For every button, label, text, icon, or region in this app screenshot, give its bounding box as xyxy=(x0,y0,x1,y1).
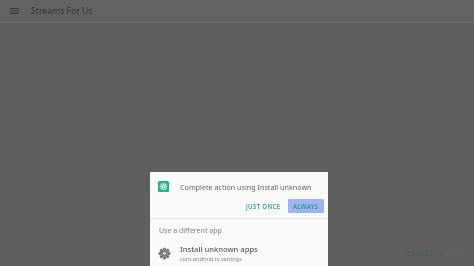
staticText: CANCEL xyxy=(407,249,435,258)
button[interactable]: Install unknown apps xyxy=(150,238,328,266)
button[interactable]: ALWAYS xyxy=(288,199,324,213)
staticText: Complete action using Install unknown ap… xyxy=(180,182,318,192)
staticText: ALWAYS xyxy=(293,202,319,210)
staticText: JUST ONCE xyxy=(246,202,281,210)
button[interactable]: Menu xyxy=(7,4,21,18)
staticText: Install unknown apps xyxy=(180,244,258,254)
button[interactable]: CANCEL xyxy=(402,247,440,260)
staticText: Streams For Us xyxy=(31,5,93,17)
staticText: Use a different app xyxy=(159,226,222,236)
staticText: com.android.tv.settings xyxy=(180,255,242,263)
button[interactable]: JUST ONCE xyxy=(241,199,286,213)
